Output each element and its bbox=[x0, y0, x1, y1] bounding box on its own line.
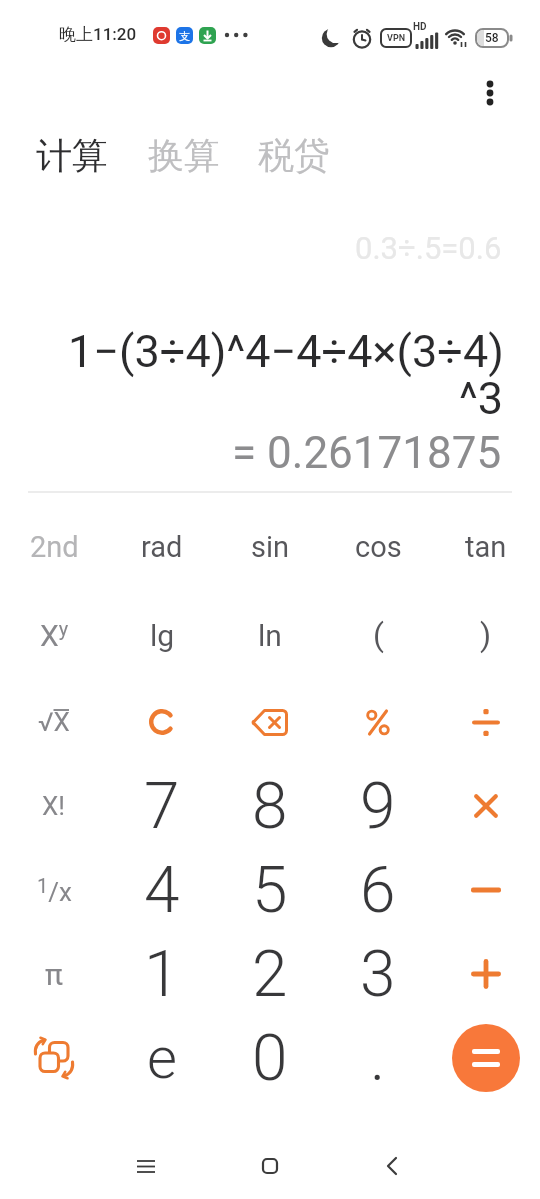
button[interactable]: 2 bbox=[222, 936, 318, 1012]
staticText: e bbox=[147, 1024, 177, 1092]
staticText: 1−(3÷4)^4−4÷4×(3÷4) bbox=[68, 325, 504, 378]
button[interactable] bbox=[438, 936, 534, 1012]
staticText: 换算 bbox=[148, 133, 220, 178]
staticText: 1/x bbox=[37, 874, 72, 907]
staticText: 支 bbox=[179, 29, 190, 43]
staticText: π bbox=[45, 957, 63, 992]
button[interactable]: 6 bbox=[330, 852, 426, 928]
button[interactable]: ( bbox=[330, 597, 426, 673]
staticText: cos bbox=[355, 530, 402, 564]
button[interactable]: rad bbox=[114, 509, 210, 585]
staticText: 4 bbox=[144, 853, 180, 928]
button[interactable]: e bbox=[114, 1020, 210, 1096]
staticText: lg bbox=[150, 618, 175, 653]
button[interactable] bbox=[114, 1142, 178, 1190]
button[interactable] bbox=[330, 684, 426, 760]
button[interactable]: 1 bbox=[114, 936, 210, 1012]
staticText: 9 bbox=[360, 769, 396, 844]
button[interactable]: 5 bbox=[222, 852, 318, 928]
button[interactable]: π bbox=[6, 936, 102, 1012]
staticText: X! bbox=[42, 791, 66, 821]
staticText: 晚上11:20 bbox=[59, 24, 137, 45]
staticText: 5 bbox=[252, 853, 288, 928]
staticText: 2 bbox=[252, 937, 288, 1012]
staticText: 58 bbox=[485, 31, 499, 45]
button[interactable]: lg bbox=[114, 597, 210, 673]
button[interactable]: ) bbox=[438, 597, 534, 673]
button[interactable]: 2nd bbox=[6, 509, 102, 585]
button[interactable] bbox=[6, 1020, 102, 1096]
staticText: 0.3÷.5=0.6 bbox=[355, 230, 502, 266]
button[interactable]: 7 bbox=[114, 768, 210, 844]
button[interactable]: sin bbox=[222, 509, 318, 585]
button[interactable]: 1/x bbox=[6, 852, 102, 928]
button[interactable]: 税贷 bbox=[258, 133, 330, 178]
staticText: √X bbox=[38, 707, 70, 737]
staticText: 2nd bbox=[30, 530, 79, 564]
button[interactable]: 9 bbox=[330, 768, 426, 844]
staticText: ln bbox=[258, 618, 282, 653]
staticText: 6 bbox=[360, 853, 396, 928]
button[interactable] bbox=[360, 1142, 424, 1190]
button[interactable] bbox=[438, 768, 534, 844]
button[interactable]: 计算 bbox=[36, 133, 108, 178]
staticText: 0 bbox=[252, 1021, 288, 1096]
staticText: 3 bbox=[360, 937, 396, 1012]
button[interactable]: 8 bbox=[222, 768, 318, 844]
button[interactable] bbox=[238, 1142, 302, 1190]
button[interactable]: 0 bbox=[222, 1020, 318, 1096]
staticText: ) bbox=[480, 616, 492, 654]
staticText: HD bbox=[413, 21, 427, 33]
button[interactable]: Xy bbox=[6, 597, 102, 673]
button[interactable]: 3 bbox=[330, 936, 426, 1012]
staticText: 7 bbox=[144, 769, 180, 844]
button[interactable]: 换算 bbox=[148, 133, 220, 178]
staticText: tan bbox=[465, 530, 507, 564]
staticText: Xy bbox=[40, 617, 69, 653]
staticText: 8 bbox=[252, 769, 288, 844]
staticText: 1 bbox=[144, 937, 180, 1012]
staticText: rad bbox=[141, 530, 183, 564]
button[interactable]: tan bbox=[438, 509, 534, 585]
staticText: VPN bbox=[387, 33, 406, 44]
staticText: ^3 bbox=[459, 372, 504, 425]
button[interactable]: 4 bbox=[114, 852, 210, 928]
staticText: sin bbox=[251, 530, 290, 564]
button[interactable] bbox=[222, 684, 318, 760]
button[interactable]: X! bbox=[6, 768, 102, 844]
button[interactable]: cos bbox=[330, 509, 426, 585]
staticText: = 0.26171875 bbox=[232, 427, 502, 479]
staticText: ( bbox=[373, 616, 384, 654]
button[interactable] bbox=[452, 1024, 520, 1092]
staticText: 税贷 bbox=[258, 133, 330, 178]
button[interactable] bbox=[438, 852, 534, 928]
button[interactable] bbox=[114, 684, 210, 760]
button[interactable] bbox=[466, 68, 514, 116]
button[interactable]: ln bbox=[222, 597, 318, 673]
staticText: 计算 bbox=[36, 133, 108, 178]
button[interactable]: √X bbox=[6, 684, 102, 760]
button[interactable]: . bbox=[330, 1020, 426, 1096]
staticText: . bbox=[370, 1021, 386, 1096]
button[interactable] bbox=[438, 684, 534, 760]
